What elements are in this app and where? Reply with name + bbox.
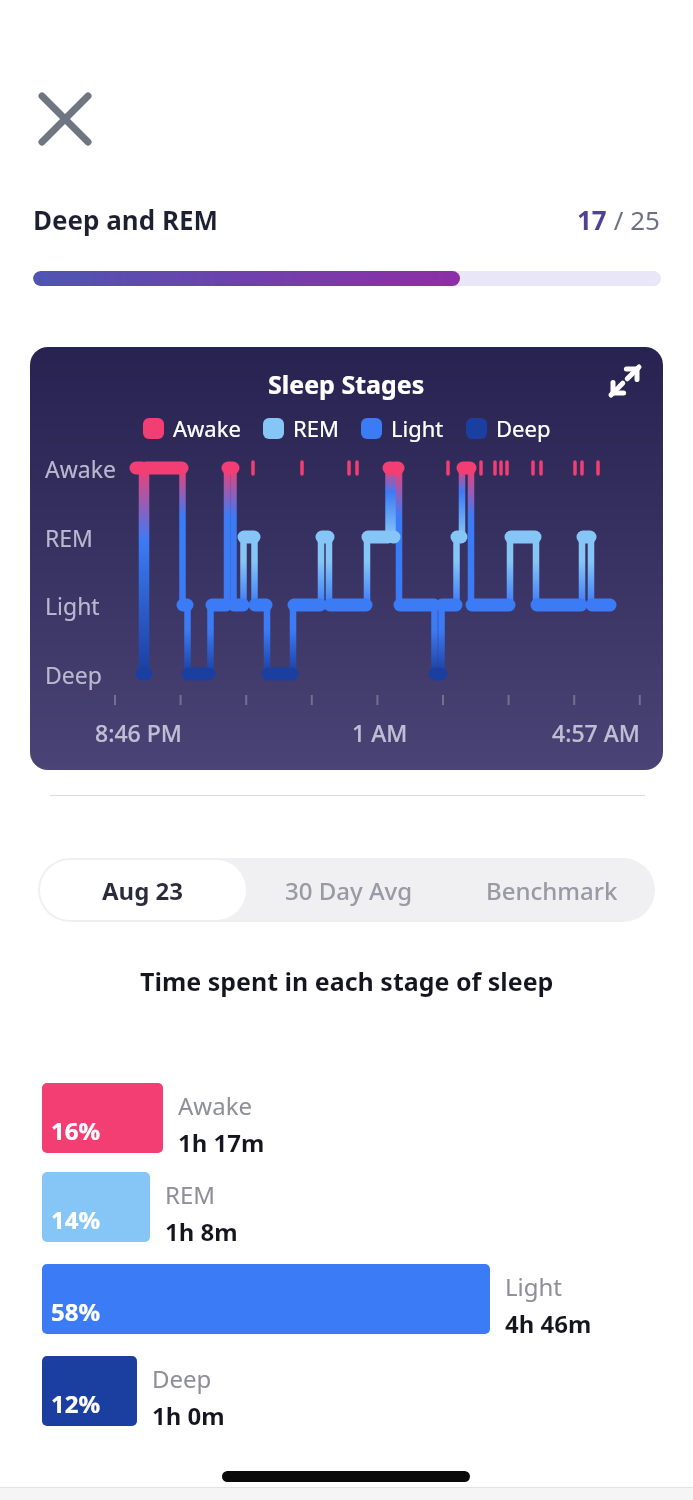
- staticText: Light: [45, 590, 100, 621]
- staticText: 8:46 PM: [95, 717, 182, 748]
- staticText: Deep and REM: [33, 202, 219, 237]
- staticText: 4:57 AM: [552, 717, 640, 748]
- staticText: Aug 23: [102, 874, 184, 907]
- staticText: 1h 8m: [165, 1215, 238, 1248]
- staticText: 1 AM: [352, 717, 408, 748]
- staticText: Deep: [152, 1362, 212, 1395]
- button[interactable]: Aug 23: [40, 860, 246, 920]
- staticText: REM: [45, 522, 93, 553]
- staticText: 1h 17m: [178, 1126, 265, 1159]
- staticText: Deep: [496, 413, 551, 443]
- staticText: 4h 46m: [505, 1307, 592, 1340]
- button[interactable]: Benchmark: [449, 858, 655, 922]
- staticText: 1h 0m: [152, 1399, 225, 1432]
- staticText: Light: [391, 413, 444, 443]
- staticText: Time spent in each stage of sleep: [140, 964, 554, 998]
- staticText: Awake: [178, 1089, 253, 1122]
- staticText: REM: [165, 1178, 216, 1211]
- staticText: / 25: [607, 202, 660, 237]
- staticText: Sleep Stages: [268, 367, 425, 401]
- staticText: Deep: [45, 659, 102, 690]
- staticText: Light: [505, 1270, 563, 1303]
- staticText: REM: [293, 413, 339, 443]
- staticText: Awake: [173, 413, 241, 443]
- staticText: 16%: [51, 1114, 101, 1147]
- staticText: 58%: [51, 1295, 101, 1328]
- staticText: Benchmark: [486, 874, 618, 907]
- button[interactable]: [33, 87, 97, 151]
- button[interactable]: [605, 361, 645, 401]
- staticText: 14%: [51, 1203, 101, 1236]
- button[interactable]: 14%: [42, 1172, 150, 1242]
- button[interactable]: 12%: [42, 1356, 137, 1426]
- button[interactable]: 58%: [42, 1264, 490, 1334]
- button[interactable]: 16%: [42, 1083, 163, 1153]
- staticText: Awake: [45, 453, 116, 484]
- button[interactable]: 30 Day Avg: [246, 858, 452, 922]
- staticText: 12%: [51, 1387, 101, 1420]
- staticText: 17: [577, 202, 607, 237]
- staticText: 30 Day Avg: [285, 874, 413, 907]
